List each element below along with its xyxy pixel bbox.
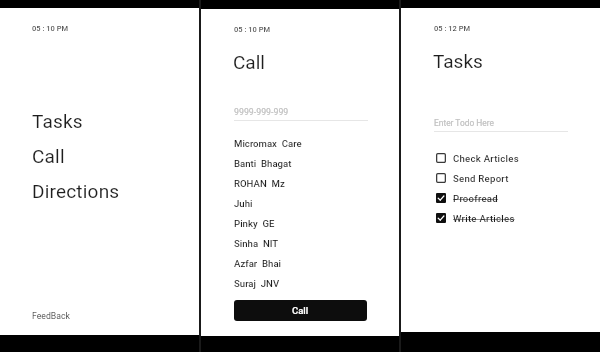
staticText: Check Articles <box>453 153 519 164</box>
staticText: Directions <box>32 180 120 202</box>
button[interactable]: Tasks <box>0 103 199 138</box>
staticText: Write Articles <box>453 213 515 224</box>
button[interactable]: Micromax Care <box>201 133 399 153</box>
staticText: Juhi <box>234 198 253 209</box>
button[interactable]: Send Report <box>401 168 600 188</box>
staticText: 9999-999-999 <box>234 107 289 117</box>
button[interactable]: FeedBack <box>30 308 72 324</box>
staticText: Banti Bhagat <box>234 158 292 169</box>
button[interactable]: 9999-999-999 <box>233 104 369 117</box>
staticText: Tasks <box>32 110 83 132</box>
staticText: Suraj JNV <box>234 278 280 289</box>
staticText: 05 : 12 PM <box>434 24 471 33</box>
button[interactable]: Azfar Bhai <box>201 253 399 273</box>
button[interactable]: Check Articles <box>401 148 600 168</box>
button[interactable]: Sinha NIT <box>201 233 399 253</box>
button[interactable]: Write Articles <box>401 208 600 228</box>
button[interactable]: Directions <box>0 173 199 208</box>
button[interactable]: Suraj JNV <box>201 273 399 293</box>
staticText: Pinky GE <box>234 218 275 229</box>
button[interactable]: Call <box>0 138 199 173</box>
staticText: Enter Todo Here <box>434 118 494 128</box>
staticText: ROHAN Mz <box>234 178 285 189</box>
staticText: 05 : 10 PM <box>32 24 69 33</box>
staticText: 05 : 10 PM <box>234 25 271 34</box>
staticText: Sinha NIT <box>234 238 279 249</box>
staticText: Proofread <box>453 193 498 204</box>
staticText: Call <box>292 305 309 316</box>
button[interactable]: Enter Todo Here <box>433 115 569 128</box>
button[interactable]: Pinky GE <box>201 213 399 233</box>
button[interactable]: ROHAN Mz <box>201 173 399 193</box>
button[interactable]: Juhi <box>201 193 399 213</box>
button[interactable]: Banti Bhagat <box>201 153 399 173</box>
staticText: Send Report <box>453 173 509 184</box>
staticText: Tasks <box>433 50 483 72</box>
staticText: Micromax Care <box>234 138 302 149</box>
staticText: FeedBack <box>32 311 70 321</box>
staticText: Call <box>233 51 265 73</box>
button[interactable]: Call <box>234 300 367 321</box>
button[interactable]: Proofread <box>401 188 600 208</box>
staticText: Call <box>32 145 65 167</box>
staticText: Azfar Bhai <box>234 258 282 269</box>
